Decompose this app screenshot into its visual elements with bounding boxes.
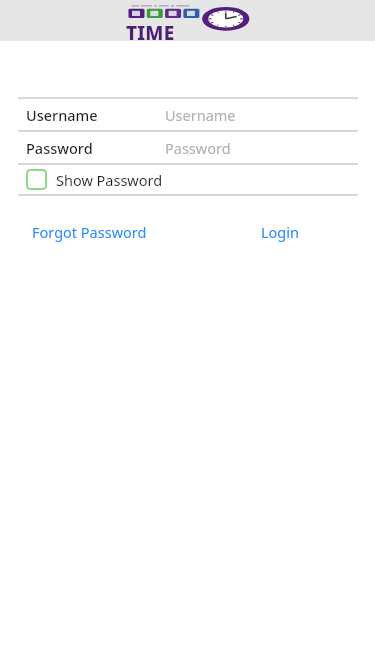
- staticText: Username: [26, 105, 98, 125]
- staticText: Forgot Password: [32, 222, 147, 242]
- button[interactable]: Forgot Password: [18, 216, 161, 248]
- staticText: Show Password: [56, 170, 163, 190]
- other: Punch In Time logo: [124, 3, 252, 39]
- staticText: Login: [261, 222, 299, 242]
- staticText: TIME: [126, 20, 175, 46]
- button[interactable]: Password: [0, 132, 375, 163]
- button[interactable]: Show Password: [0, 165, 375, 194]
- button[interactable]: Username: [0, 99, 375, 130]
- staticText: Password: [165, 138, 231, 158]
- staticText: Username: [165, 105, 236, 125]
- button[interactable]: Login: [247, 216, 313, 248]
- staticText: Password: [26, 138, 93, 158]
